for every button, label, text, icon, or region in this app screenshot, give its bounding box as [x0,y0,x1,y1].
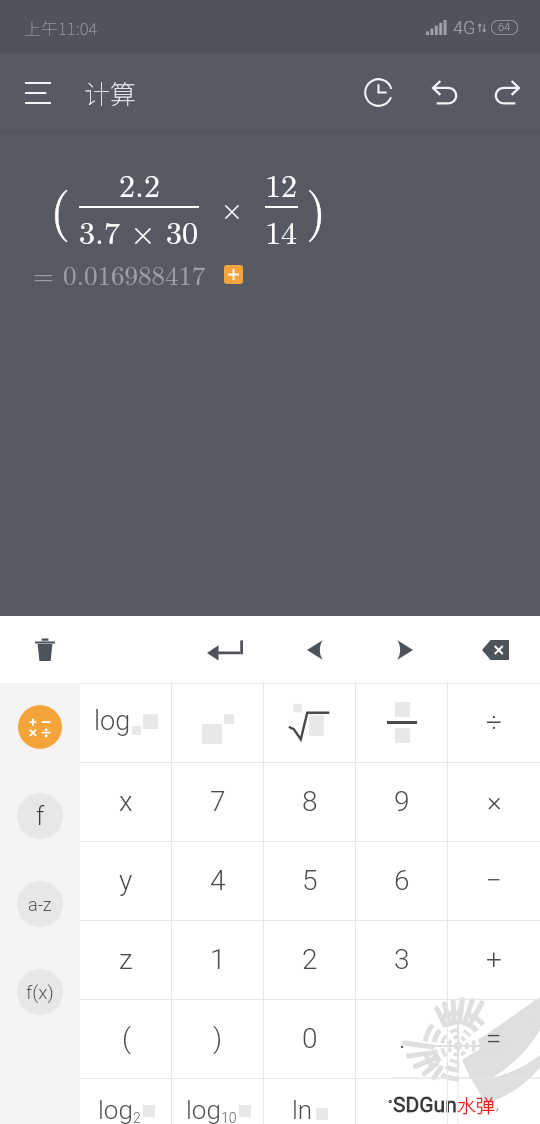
button[interactable]: 6 [356,841,448,920]
button[interactable]: 3 [356,920,448,999]
staticText: 64 [498,21,511,34]
button[interactable]: a-z [17,881,63,927]
button[interactable]: − [448,841,540,920]
staticText: + [486,943,502,976]
button[interactable]: z [80,920,172,999]
staticText: log [186,1095,221,1124]
staticText: ( [50,170,71,244]
staticText: 2 [133,1110,141,1124]
staticText: × [221,187,243,227]
staticText: 3.7 × 30 [79,208,199,253]
button[interactable]: 7 [172,762,264,841]
button[interactable]: 9 [356,762,448,841]
staticText: y [119,864,133,897]
button[interactable]: ) [172,999,264,1078]
staticText: SDGun [393,1093,457,1118]
button[interactable]: Redo [476,54,540,131]
button[interactable]: 1 [172,920,264,999]
staticText: 2 [302,943,318,976]
staticText: , [496,1097,499,1113]
button[interactable]: Enter [180,616,270,683]
button[interactable]: × [448,762,540,841]
button[interactable] [356,683,448,762]
staticText: log [98,1095,133,1124]
button[interactable]: ln [264,1078,356,1124]
button[interactable]: Undo [412,54,476,131]
button[interactable]: . [356,999,448,1078]
staticText: 6 [394,864,410,897]
button[interactable]: Right [360,616,450,683]
staticText: 12 [265,161,298,206]
button[interactable]: ÷ [448,683,540,762]
staticText: − [486,864,502,897]
staticText: = 0.016988417 [33,255,206,293]
staticText: . [399,1022,406,1055]
staticText: ÷ [486,706,502,739]
staticText: 计算 [84,74,137,112]
staticText: 上午11:04 [24,15,98,40]
staticText: f [36,802,45,831]
staticText: log [94,705,131,737]
button[interactable]: log [80,683,172,762]
button[interactable]: Clear [0,616,90,683]
staticText: ) [306,170,327,244]
button[interactable]: x [80,762,172,841]
button[interactable]: 2 [264,920,356,999]
staticText: 4G [453,17,476,38]
button[interactable]: + [448,920,540,999]
staticText: x [119,785,133,818]
staticText: a-z [28,894,52,915]
button[interactable] [264,683,356,762]
staticText: ( [122,1022,131,1055]
staticText: 14 [265,208,298,253]
button[interactable]: Operators [18,705,62,749]
button[interactable]: History [346,54,410,131]
button[interactable]: Menu [6,54,70,131]
button[interactable]: log [80,1078,172,1124]
staticText: 5 [302,864,318,897]
button[interactable] [356,1078,448,1124]
button[interactable]: f [17,793,63,839]
button[interactable]: Left [270,616,360,683]
button[interactable]: ( [80,999,172,1078]
button[interactable]: 5 [264,841,356,920]
staticText: 0 [302,1022,318,1055]
staticText: ) [213,1022,223,1055]
staticText: 2.2 [119,161,160,206]
staticText: 4 [210,864,226,897]
button[interactable]: Backspace [450,616,540,683]
button[interactable]: log [172,1078,264,1124]
button[interactable]: = [448,999,540,1078]
button[interactable]: 4 [172,841,264,920]
staticText: × [487,785,502,818]
button[interactable] [448,1078,540,1124]
button[interactable]: Add [224,265,243,284]
button[interactable]: 0 [264,999,356,1078]
button[interactable]: f(x) [17,969,63,1015]
staticText: 3 [394,943,410,976]
button[interactable]: y [80,841,172,920]
staticText: 1 [210,943,226,976]
staticText: 8 [302,785,318,818]
staticText: ln [292,1095,313,1124]
staticText: 水弹 [457,1091,496,1119]
staticText: z [119,943,133,976]
staticText: = [486,1022,502,1055]
staticText: 9 [394,785,410,818]
staticText: 7 [210,785,226,818]
staticText: f(x) [26,981,54,1003]
button[interactable]: 8 [264,762,356,841]
staticText: ° [388,1098,393,1112]
staticText: 10 [221,1110,237,1124]
button[interactable] [172,683,264,762]
